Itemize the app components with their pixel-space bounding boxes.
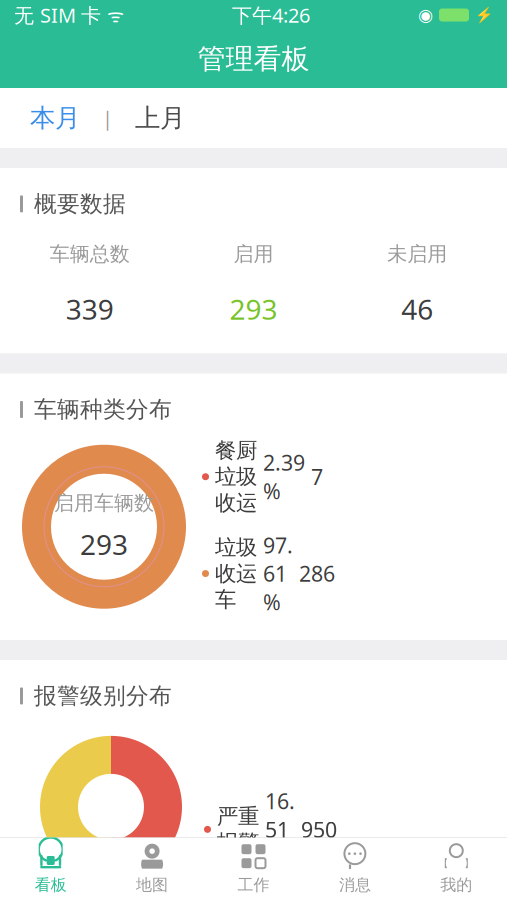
staticText: 未启用 xyxy=(387,242,447,266)
staticText: 餐厨垃圾收运 xyxy=(215,437,257,516)
staticText: 消息 xyxy=(339,875,371,895)
staticText: 上月 xyxy=(135,102,185,133)
staticText: 下午4:26 xyxy=(232,2,310,28)
staticText: 概要数据 xyxy=(34,190,126,218)
staticText: 293 xyxy=(80,525,128,563)
staticText: 车辆总数 xyxy=(50,242,130,266)
staticText: 293 xyxy=(229,290,277,328)
button[interactable]: 我的 xyxy=(406,838,507,900)
staticText: ᯤ xyxy=(107,3,124,27)
staticText: 339 xyxy=(66,290,114,328)
staticText: ◉ xyxy=(418,5,433,25)
staticText: ⚡ xyxy=(475,7,493,23)
staticText: | xyxy=(102,105,113,131)
staticText: 16.51% xyxy=(265,787,295,872)
staticText: 启用 xyxy=(233,242,273,266)
staticText: 车辆种类分布 xyxy=(34,396,172,423)
staticText: 46 xyxy=(401,290,433,328)
button[interactable]: 地图 xyxy=(101,838,203,900)
staticText: 报警级别分布 xyxy=(34,682,172,710)
staticText: 本月 xyxy=(30,102,80,133)
staticText: 管理看板 xyxy=(197,42,309,76)
staticText: 严重报警 xyxy=(217,803,259,856)
button[interactable]: 本月 xyxy=(24,88,86,148)
button[interactable]: 看板 xyxy=(0,838,101,900)
button[interactable]: 工作 xyxy=(203,838,304,900)
staticText: 地图 xyxy=(136,875,168,895)
staticText: 无 SIM 卡 xyxy=(14,2,101,28)
staticText: 2.39% xyxy=(263,448,305,505)
button[interactable]: 消息 xyxy=(304,838,406,900)
staticText: 950 xyxy=(301,815,337,843)
staticText: 97.61% xyxy=(263,531,293,616)
staticText: 启用车辆数 xyxy=(54,491,154,515)
button[interactable]: 上月 xyxy=(129,88,191,148)
staticText: 286 xyxy=(299,559,335,588)
staticText: 我的 xyxy=(440,875,472,895)
staticText: 7 xyxy=(311,463,323,491)
staticText: 看板 xyxy=(35,875,67,895)
staticText: 垃圾收运车 xyxy=(215,534,257,613)
staticText: 工作 xyxy=(237,875,269,895)
